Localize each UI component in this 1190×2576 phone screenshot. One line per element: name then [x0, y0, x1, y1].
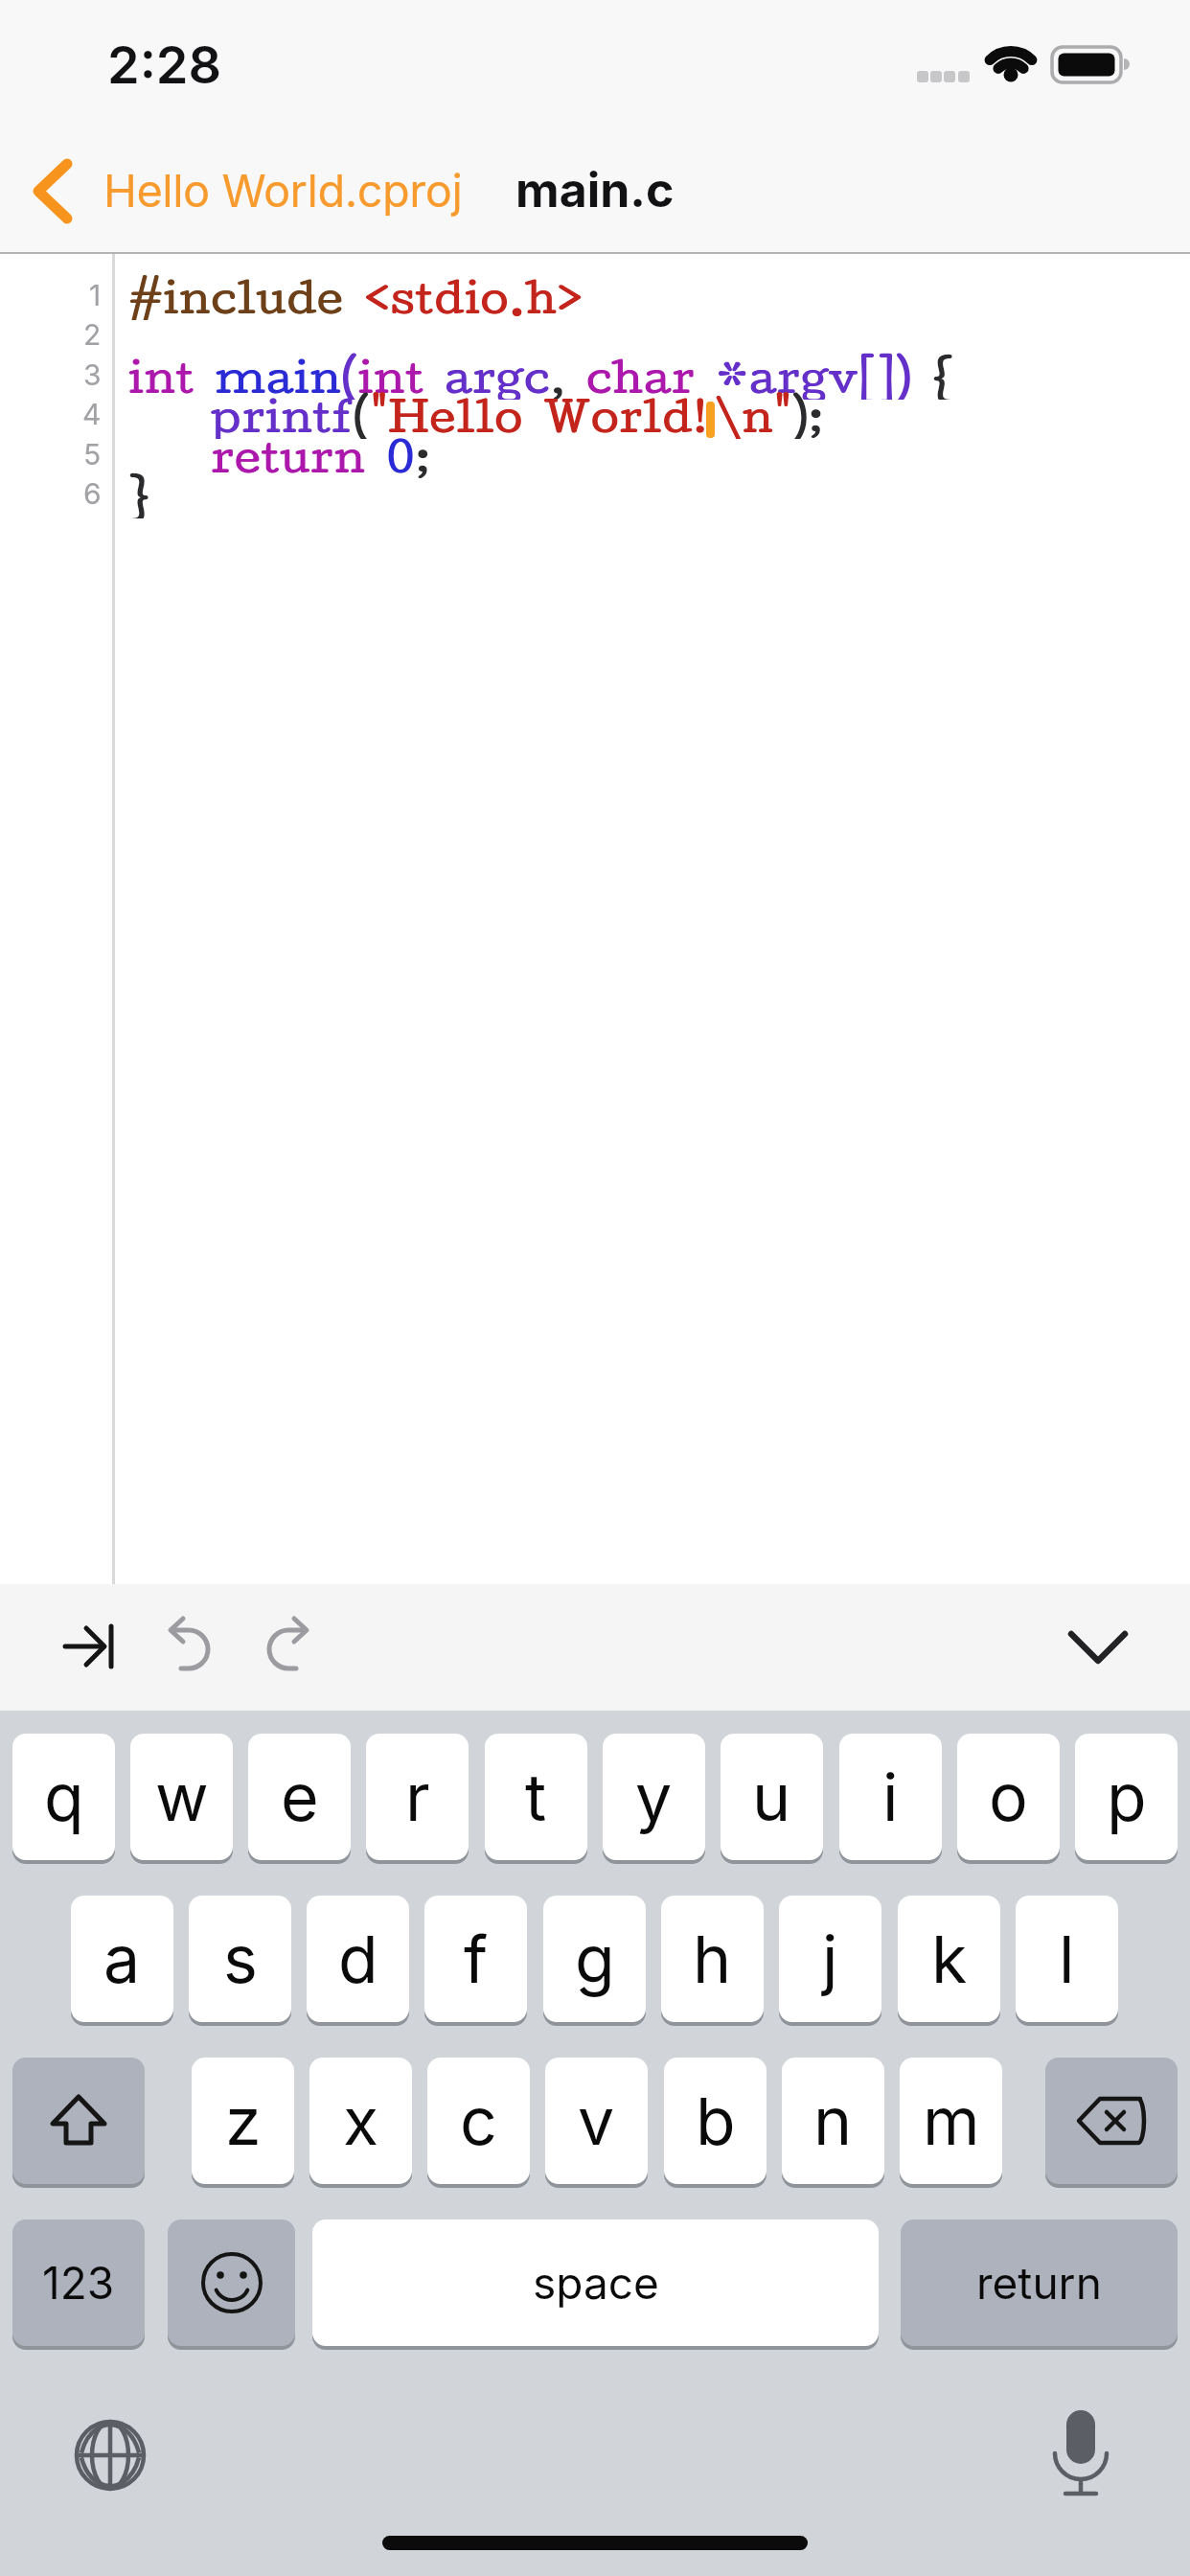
staticText: o	[989, 1758, 1028, 1836]
button[interactable]: c	[427, 2058, 530, 2184]
button[interactable]: u	[721, 1734, 823, 1860]
staticText: #include <stdio.h>	[129, 270, 584, 320]
staticText: s	[223, 1920, 258, 1998]
staticText: printf("Hello World! \n");	[129, 389, 825, 439]
staticText: return 0;	[129, 429, 432, 479]
button[interactable]	[158, 1613, 225, 1680]
staticText: return 0;	[128, 429, 431, 479]
staticText: #include <stdio.h>	[128, 270, 584, 320]
button[interactable]: g	[543, 1896, 646, 2022]
staticText: e	[281, 1758, 319, 1836]
button[interactable]: h	[661, 1896, 764, 2022]
staticText: 1	[89, 278, 102, 312]
button[interactable]: n	[782, 2058, 884, 2184]
button[interactable]: f	[424, 1896, 527, 2022]
button[interactable]: w	[130, 1734, 233, 1860]
staticText: b	[696, 2081, 736, 2160]
staticText: 2:28	[107, 34, 222, 96]
staticText: l	[1059, 1920, 1075, 1998]
staticText: m	[923, 2081, 980, 2160]
button[interactable]: l	[1016, 1896, 1118, 2022]
staticText: printf("Hello World! \n");	[128, 389, 824, 439]
button[interactable]	[1049, 2405, 1116, 2501]
staticText: i	[882, 1758, 899, 1836]
staticText: y	[635, 1758, 673, 1836]
staticText: d	[338, 1920, 378, 1998]
button[interactable]: Hello World.cproj	[103, 160, 525, 219]
staticText: 4	[82, 397, 102, 431]
staticText: 6	[83, 476, 102, 511]
button[interactable]	[1045, 2058, 1178, 2184]
button[interactable]: q	[12, 1734, 115, 1860]
staticText: f	[464, 1920, 489, 1998]
staticText: 123	[42, 2256, 115, 2310]
button[interactable]: y	[603, 1734, 705, 1860]
staticText: w	[155, 1758, 209, 1836]
button[interactable]	[29, 158, 82, 225]
staticText: space	[533, 2256, 659, 2310]
staticText: Hello World.cproj	[103, 163, 463, 218]
staticText: t	[525, 1758, 547, 1836]
button[interactable]	[12, 2058, 145, 2184]
button[interactable]: p	[1075, 1734, 1178, 1860]
staticText: n	[813, 2081, 853, 2160]
staticText: u	[752, 1758, 791, 1836]
button[interactable]	[252, 1613, 319, 1680]
button[interactable]: m	[900, 2058, 1002, 2184]
staticText: 5	[83, 437, 102, 471]
staticText: return	[976, 2256, 1102, 2310]
button[interactable]: o	[957, 1734, 1060, 1860]
staticText: x	[343, 2081, 379, 2160]
staticText: c	[460, 2081, 497, 2160]
button[interactable]: v	[545, 2058, 648, 2184]
staticText: q	[44, 1758, 84, 1836]
button[interactable]: r	[366, 1734, 469, 1860]
button[interactable]: d	[307, 1896, 409, 2022]
staticText: k	[931, 1920, 968, 1998]
staticText: }	[129, 469, 151, 518]
button[interactable]: s	[189, 1896, 291, 2022]
staticText: z	[225, 2081, 262, 2160]
button[interactable]: return	[901, 2219, 1178, 2346]
button[interactable]: k	[898, 1896, 1000, 2022]
staticText: j	[822, 1920, 838, 1998]
staticText: p	[1107, 1758, 1147, 1836]
staticText: int main(int argc, char *argv[]) {	[129, 350, 955, 400]
staticText: r	[405, 1758, 430, 1836]
staticText: v	[578, 2081, 615, 2160]
button[interactable]	[57, 1617, 121, 1676]
button[interactable]: x	[309, 2058, 412, 2184]
button[interactable]: 123	[12, 2219, 145, 2346]
button[interactable]: e	[248, 1734, 351, 1860]
button[interactable]: z	[192, 2058, 294, 2184]
button[interactable]: t	[485, 1734, 587, 1860]
button[interactable]	[1062, 1620, 1138, 1677]
button[interactable]: i	[839, 1734, 942, 1860]
staticText: }	[128, 469, 150, 518]
staticText: int main(int argc, char *argv[]) {	[128, 350, 954, 400]
staticText: main.c	[515, 161, 675, 218]
staticText: h	[693, 1920, 732, 1998]
button[interactable]: a	[71, 1896, 173, 2022]
staticText: a	[103, 1920, 141, 1998]
button[interactable]	[168, 2219, 295, 2346]
button[interactable]: space	[312, 2219, 879, 2346]
staticText: 2	[83, 317, 102, 352]
staticText: 3	[83, 357, 102, 392]
button[interactable]	[72, 2417, 149, 2494]
button[interactable]: j	[779, 1896, 881, 2022]
staticText: g	[575, 1920, 615, 1998]
button[interactable]: b	[664, 2058, 767, 2184]
